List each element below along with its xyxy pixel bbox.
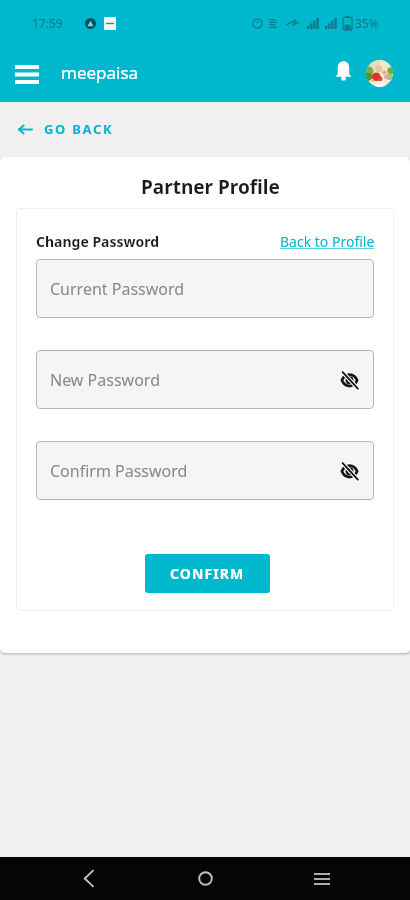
staticText: 35% <box>355 15 379 31</box>
button[interactable]: Back <box>61 857 117 900</box>
button[interactable]: Recents <box>294 857 350 900</box>
button[interactable]: New Password <box>36 350 374 409</box>
staticText: Current Password <box>50 278 185 300</box>
button[interactable]: Back to Profile <box>280 232 375 251</box>
staticText: Change Password <box>36 232 160 251</box>
staticText: meepaisa <box>61 61 139 84</box>
staticText: GO BACK <box>44 120 114 138</box>
staticText: New Password <box>50 369 160 391</box>
button[interactable]: Toggle password visibility <box>336 367 362 393</box>
staticText: CONFIRM <box>170 564 245 583</box>
button[interactable]: Profile <box>366 60 393 87</box>
staticText: Confirm Password <box>50 460 188 482</box>
button[interactable]: GO BACK <box>0 102 410 157</box>
button[interactable]: Menu <box>9 56 45 92</box>
button[interactable]: CONFIRM <box>145 554 270 593</box>
button[interactable]: Home <box>177 857 233 900</box>
staticText: Partner Profile <box>141 174 280 200</box>
button[interactable]: Notifications <box>328 55 358 85</box>
button[interactable]: Current Password <box>36 259 374 318</box>
button[interactable]: Toggle password visibility <box>336 458 362 484</box>
staticText: 17:59 <box>32 15 63 31</box>
button[interactable]: Confirm Password <box>36 441 374 500</box>
